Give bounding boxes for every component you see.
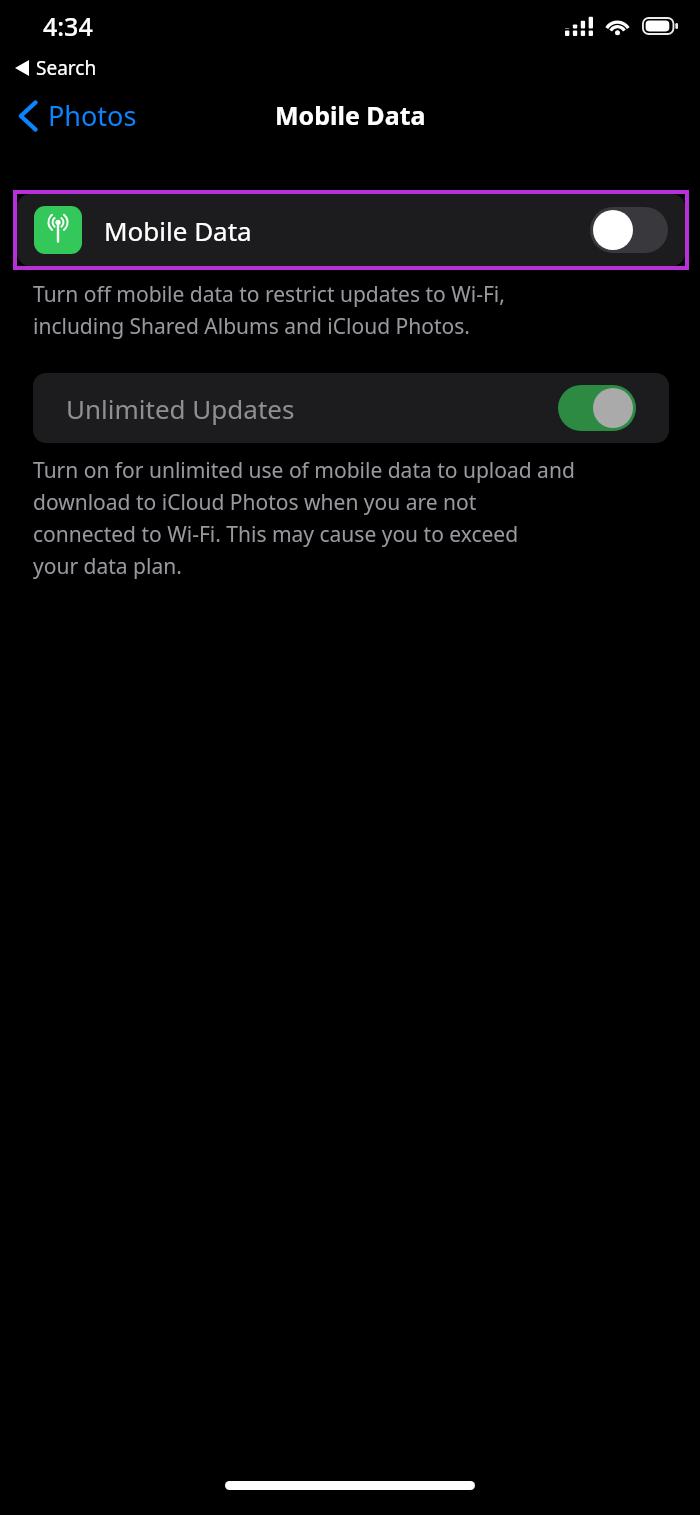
button[interactable]: Unlimited Updates bbox=[33, 373, 669, 443]
button[interactable]: Photos bbox=[18, 97, 137, 134]
staticText: Mobile Data bbox=[275, 98, 426, 132]
button[interactable]: Off bbox=[590, 207, 668, 253]
button[interactable]: Mobile Data bbox=[17, 194, 685, 266]
button[interactable]: Search bbox=[15, 52, 700, 84]
staticText: Search bbox=[36, 55, 97, 81]
button[interactable]: On bbox=[558, 385, 636, 431]
staticText: Turn on for unlimited use of mobile data… bbox=[33, 456, 575, 580]
staticText: 4:34 bbox=[43, 9, 93, 43]
staticText: Photos bbox=[48, 97, 137, 134]
staticText: Turn off mobile data to restrict updates… bbox=[33, 280, 505, 340]
staticText: Mobile Data bbox=[104, 213, 252, 248]
staticText: Unlimited Updates bbox=[66, 391, 295, 426]
